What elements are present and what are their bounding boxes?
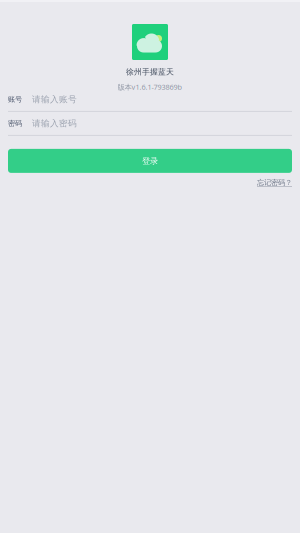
button[interactable]: 登录 (8, 149, 292, 173)
staticText: 忘记密码？ (257, 178, 292, 187)
staticText: 账号 (8, 95, 22, 104)
button[interactable]: 忘记密码？ (257, 178, 292, 187)
button[interactable]: 密码 (0, 112, 300, 135)
staticText: 徐州手握蓝天 (126, 67, 174, 77)
staticText: 登录 (142, 156, 158, 166)
staticText: 密码 (8, 119, 22, 128)
staticText: 版本v1.6.1-793869b (117, 82, 182, 92)
staticText: 请输入账号 (32, 94, 77, 105)
staticText: 请输入密码 (32, 118, 77, 129)
button[interactable]: 账号 (0, 88, 300, 111)
